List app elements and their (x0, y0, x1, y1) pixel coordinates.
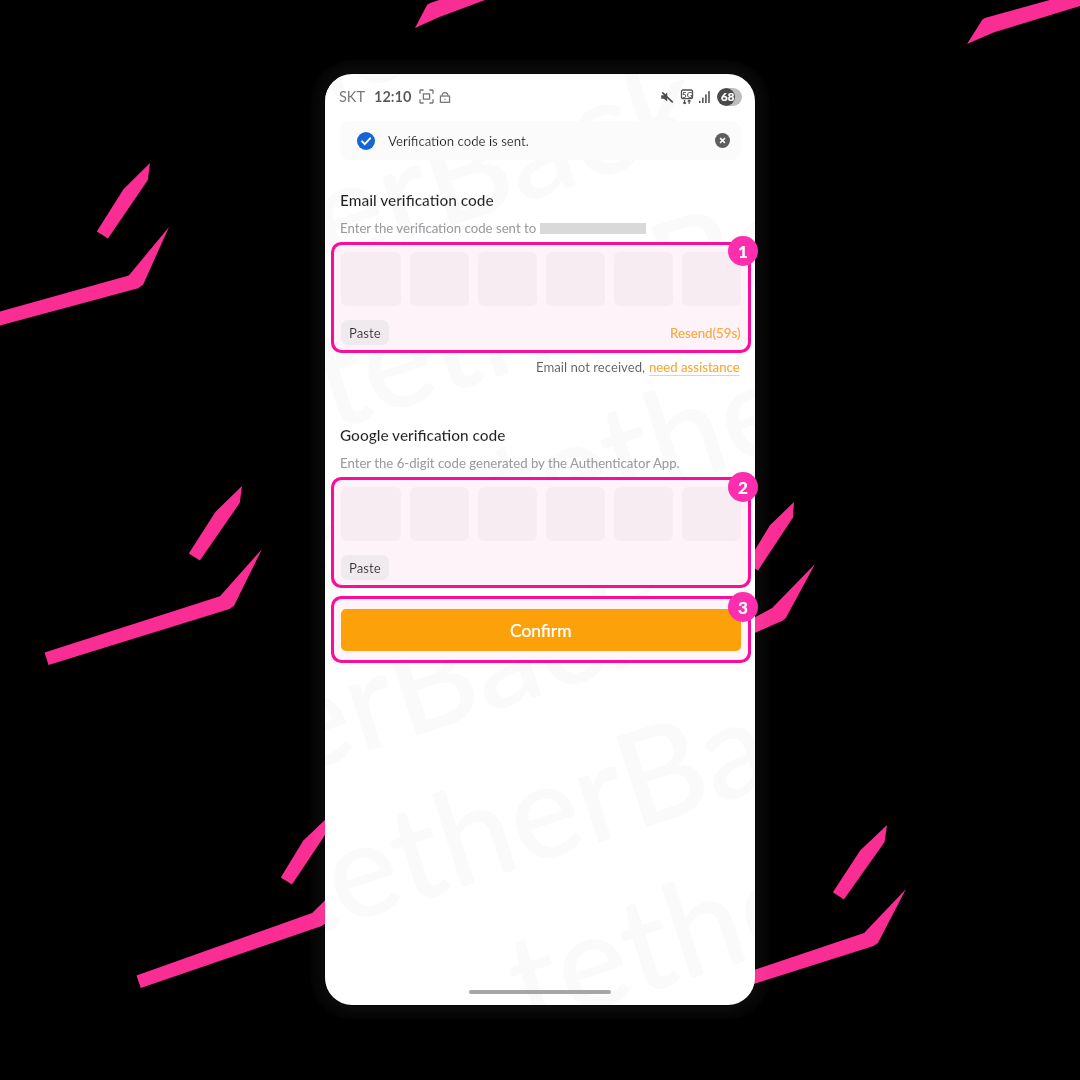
button[interactable]: Paste (341, 320, 389, 345)
staticText: Enter the verification code sent to (340, 220, 540, 236)
staticText: Email not received, (536, 359, 649, 375)
button[interactable]: Paste (341, 555, 389, 580)
other: Muted (661, 91, 673, 103)
staticText: Verification code is sent. (388, 133, 529, 149)
button[interactable]: Resend(59s) (670, 325, 741, 341)
staticText: Enter the 6-digit code generated by the … (340, 455, 680, 471)
button[interactable]: Verification code is sent. (340, 121, 741, 160)
staticText: Google verification code (340, 426, 506, 444)
button[interactable]: Confirm (341, 609, 741, 651)
staticText: 1 (738, 241, 748, 261)
staticText: Email verification code (340, 191, 494, 209)
button[interactable]: Paste (334, 245, 748, 350)
staticText: Paste (349, 325, 381, 341)
staticText: Confirm (510, 620, 572, 641)
button[interactable]: need assistance (649, 359, 740, 375)
staticText: 2 (738, 477, 748, 497)
button[interactable]: Close (715, 133, 730, 148)
staticText: Paste (349, 560, 381, 576)
button[interactable]: Paste (334, 480, 748, 585)
staticText: 5G (682, 90, 693, 100)
staticText: 3 (738, 597, 748, 617)
staticText: SKT (339, 88, 366, 105)
staticText: 68 (721, 90, 735, 104)
staticText: 12:10 (374, 88, 412, 105)
